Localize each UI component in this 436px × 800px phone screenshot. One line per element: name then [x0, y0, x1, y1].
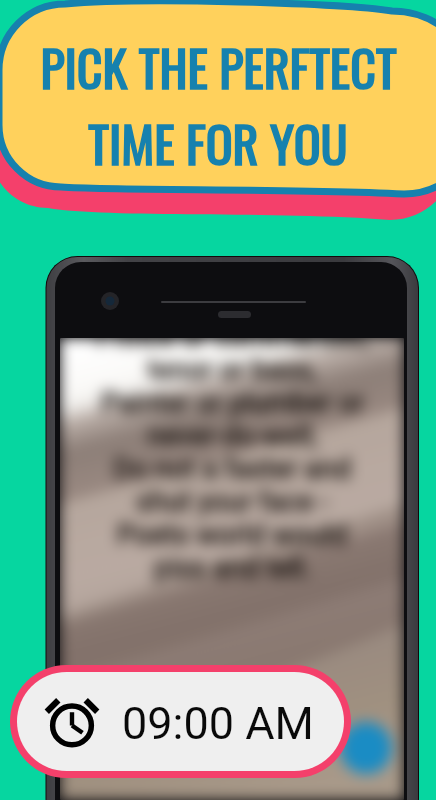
other: Alarm — [34, 681, 110, 757]
staticText: Poets world would — [117, 518, 347, 551]
staticText: Prince or commander, — [96, 338, 369, 353]
staticText: never-do-well, — [147, 419, 318, 452]
staticText: shut your face - — [136, 485, 328, 518]
button[interactable]: Alarm — [17, 672, 344, 771]
staticText: Do not a faster and — [113, 452, 351, 485]
staticText: PICK THE PERFTECT — [40, 29, 397, 103]
staticText: TIME FOR YOU — [88, 105, 348, 179]
staticText: piss and tell. — [154, 551, 311, 584]
staticText: Painter or plumber or — [101, 386, 364, 419]
staticText: tenor or bass, — [147, 353, 317, 386]
staticText: 09:00 AM — [122, 697, 314, 750]
